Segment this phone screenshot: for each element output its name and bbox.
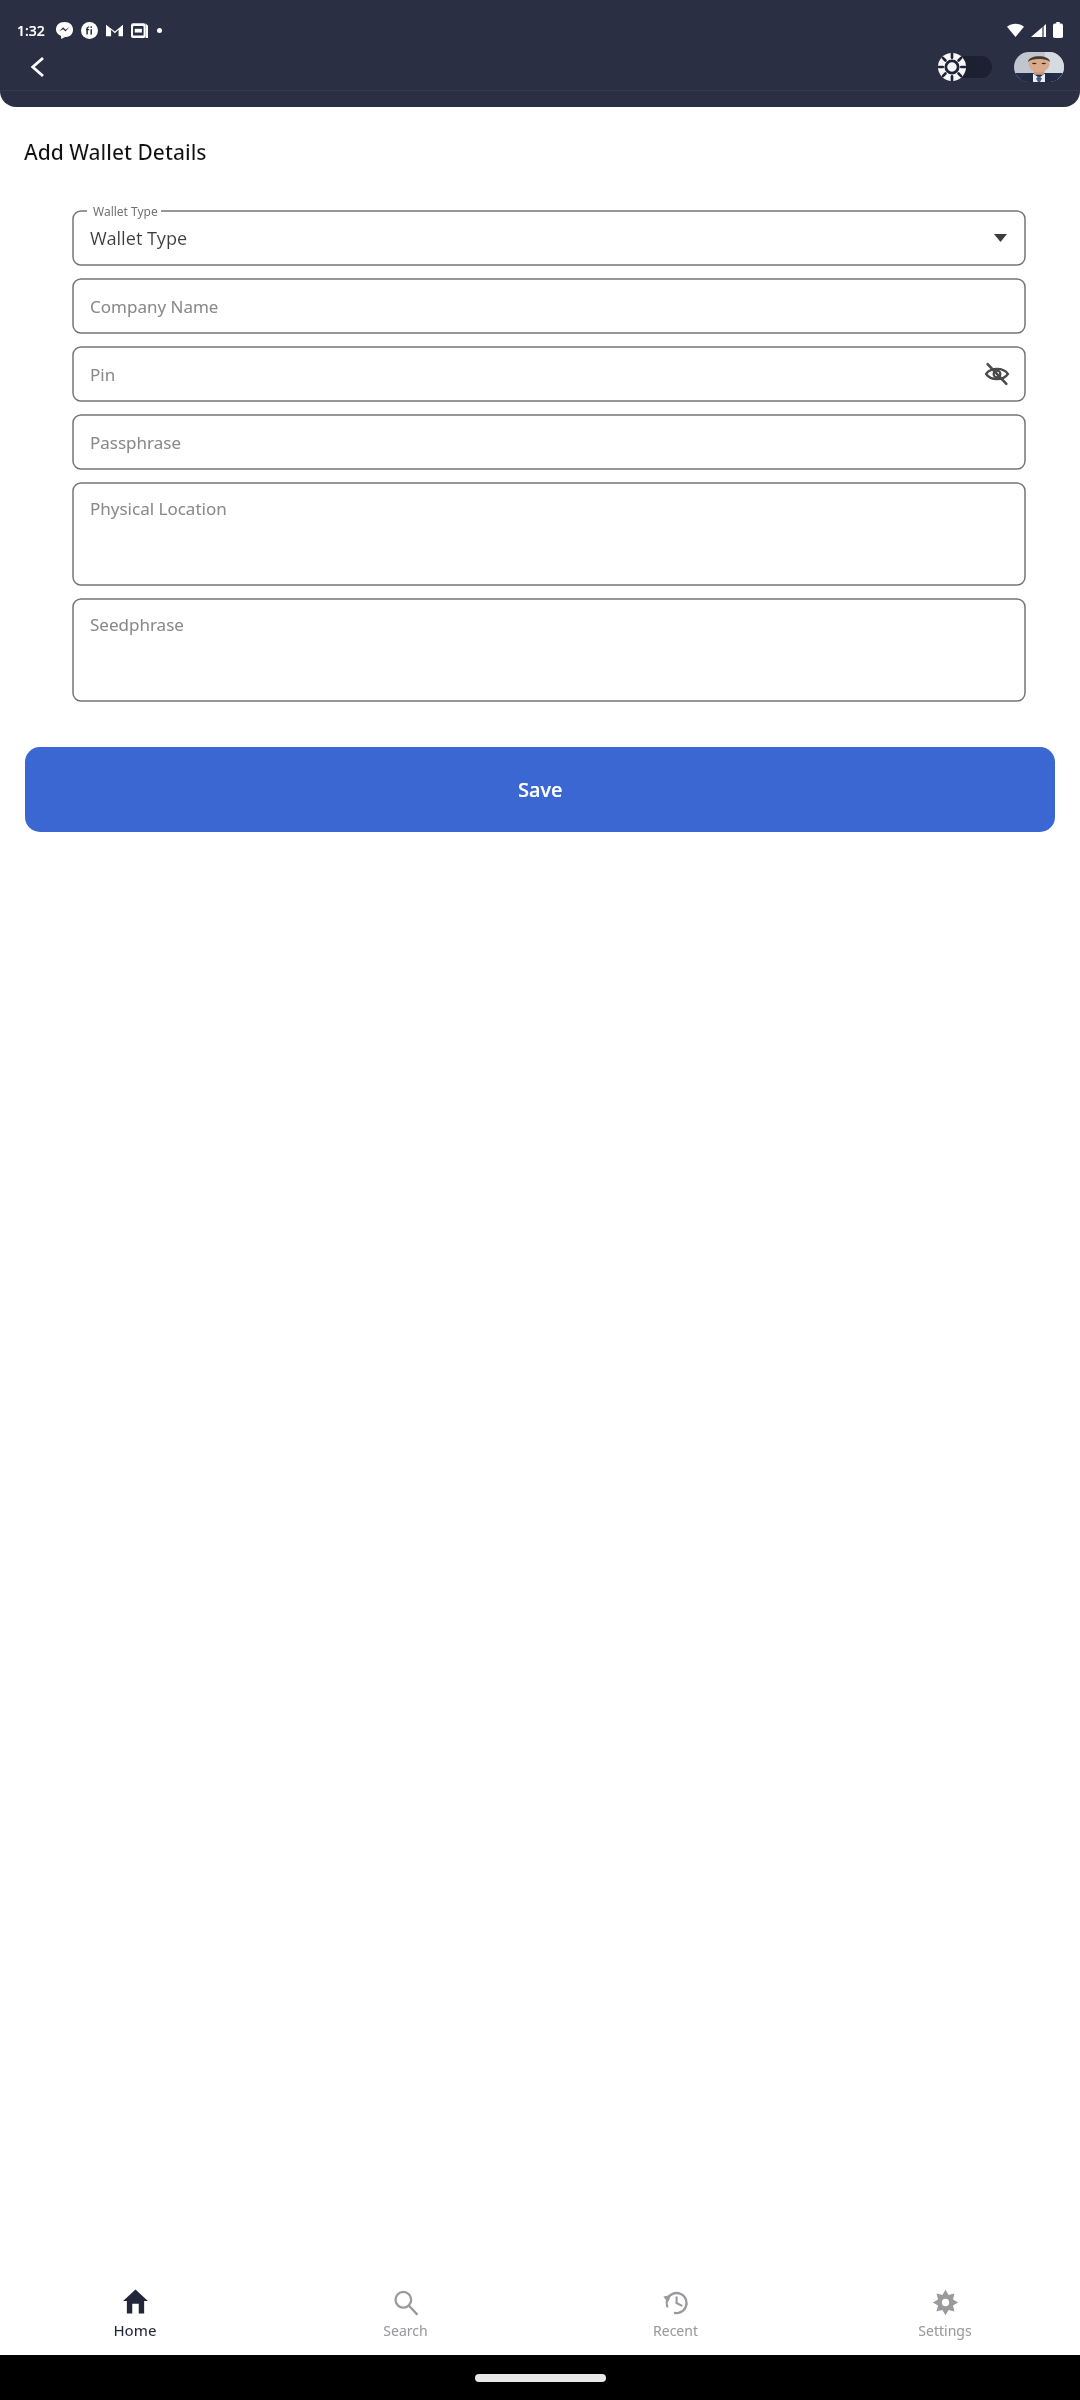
button[interactable]: Save	[25, 747, 1055, 832]
staticText: Pin	[90, 363, 116, 386]
staticText: Home	[113, 2320, 157, 2340]
staticText: Save	[518, 776, 563, 803]
staticText: 1:32	[17, 21, 45, 40]
staticText: Recent	[653, 2321, 698, 2340]
button[interactable]: Company Name	[73, 279, 1025, 333]
staticText: Search	[383, 2321, 428, 2340]
staticText: Passphrase	[90, 431, 182, 454]
staticText: Wallet Type	[90, 226, 188, 251]
staticText: Add Wallet Details	[24, 138, 207, 167]
button[interactable]: Settings	[810, 2283, 1080, 2346]
button[interactable]: Toggle theme	[938, 53, 992, 81]
button[interactable]: Pin	[73, 347, 1025, 401]
button[interactable]: Home	[0, 2282, 270, 2346]
button[interactable]: Recent	[540, 2283, 810, 2346]
button[interactable]: Physical Location	[73, 483, 1025, 585]
staticText: Wallet Type	[93, 203, 158, 219]
button[interactable]: Seedphrase	[73, 599, 1025, 701]
other: Open dropdown	[989, 227, 1011, 249]
button[interactable]: Wallet Type	[73, 211, 1025, 265]
button[interactable]: Search	[270, 2283, 540, 2346]
staticText: Company Name	[90, 295, 219, 318]
staticText: Seedphrase	[90, 613, 184, 636]
button[interactable]: Back	[14, 52, 62, 82]
staticText: Physical Location	[90, 497, 227, 520]
button[interactable]: Toggle pin visibility	[981, 358, 1013, 390]
staticText: Settings	[918, 2321, 972, 2340]
button[interactable]: Passphrase	[73, 415, 1025, 469]
button[interactable]: Profile	[1014, 52, 1064, 82]
